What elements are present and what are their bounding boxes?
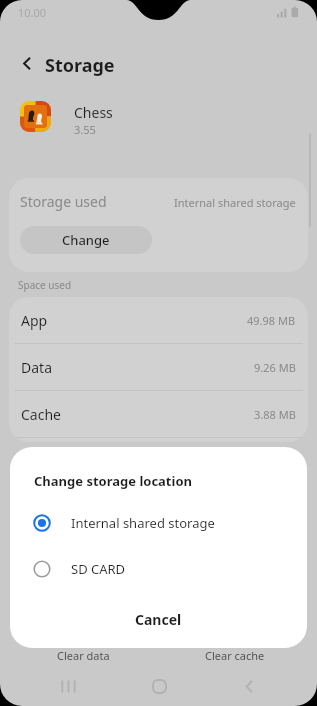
button[interactable]: Cancel bbox=[10, 599, 307, 639]
staticText: 3.88 MB bbox=[254, 407, 296, 422]
staticText: Data bbox=[21, 358, 52, 377]
staticText: Cache bbox=[21, 405, 61, 424]
button[interactable]: App bbox=[9, 297, 308, 343]
staticText: Space used bbox=[18, 278, 72, 292]
staticText: SD CARD bbox=[71, 560, 126, 578]
staticText: App bbox=[21, 311, 48, 330]
staticText: Storage bbox=[45, 53, 115, 78]
staticText: 10.00 bbox=[18, 5, 47, 20]
staticText: Clear cache bbox=[205, 648, 265, 663]
staticText: Chess bbox=[74, 103, 113, 122]
button[interactable]: Change bbox=[20, 226, 152, 254]
staticText: Storage used bbox=[20, 192, 107, 211]
staticText: 9.26 MB bbox=[254, 360, 296, 375]
staticText: Cancel bbox=[135, 610, 182, 629]
staticText: Internal shared storage bbox=[71, 514, 215, 532]
staticText: 49.98 MB bbox=[247, 313, 296, 328]
button[interactable]: Back bbox=[8, 44, 46, 82]
button[interactable]: Cache bbox=[9, 391, 308, 437]
button[interactable]: SD CARD bbox=[10, 549, 307, 589]
staticText: 3.55 bbox=[74, 122, 96, 137]
button[interactable]: Recents bbox=[45, 666, 91, 706]
staticText: Clear data bbox=[57, 648, 110, 663]
staticText: Internal shared storage bbox=[174, 195, 296, 210]
button[interactable]: Internal shared storage bbox=[10, 503, 307, 543]
staticText: Change storage location bbox=[34, 472, 192, 490]
staticText: Change bbox=[62, 231, 110, 249]
button[interactable]: Home bbox=[136, 666, 182, 706]
button[interactable]: Data bbox=[9, 344, 308, 390]
